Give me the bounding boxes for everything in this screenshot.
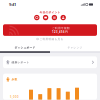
button[interactable]: 健康レポート <box>3 56 97 68</box>
staticText: 5,000 <box>10 95 19 99</box>
button[interactable]: ご利用可能額 <box>3 24 97 36</box>
button[interactable]: カード <box>51 14 58 21</box>
staticText: 123,456円 <box>52 30 68 34</box>
button[interactable]: クーポン <box>42 14 49 21</box>
staticText: 歩数 <box>12 78 18 81</box>
staticText: ご利用可能額 <box>52 26 70 30</box>
staticText: 9:41 <box>9 2 16 7</box>
staticText: ご利用明細を見る <box>39 37 63 41</box>
button[interactable]: ダッシュボード <box>0 44 50 51</box>
button[interactable]: マイページ <box>60 14 67 21</box>
button[interactable]: ご利用明細を見る <box>35 37 65 41</box>
button[interactable]: ポイント <box>33 14 40 21</box>
staticText: ダッシュボード <box>14 46 35 49</box>
staticText: 健康レポート <box>11 61 29 64</box>
button[interactable]: チャレンジ <box>50 44 100 51</box>
staticText: チャレンジ <box>67 46 82 49</box>
staticText: 今日のポイント <box>39 11 60 14</box>
